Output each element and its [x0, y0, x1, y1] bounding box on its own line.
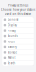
staticText: used on this device	[4, 12, 31, 16]
staticText: Display	[7, 23, 16, 27]
button[interactable]: Wallet	[2, 55, 34, 60]
staticText: Privacy	[7, 29, 15, 32]
button[interactable]: Storage	[2, 50, 34, 55]
staticText: Wallet	[7, 56, 15, 59]
button[interactable]: Privacy	[2, 28, 34, 33]
button[interactable]: Search	[2, 60, 34, 66]
staticText: Privacy settings	[8, 4, 28, 7]
staticText: Storage	[7, 51, 17, 54]
staticText: Battery	[7, 45, 16, 49]
button[interactable]: Display	[2, 22, 34, 28]
staticText: Search	[7, 61, 15, 65]
staticText: General	[7, 18, 18, 21]
staticText: Focus	[7, 40, 14, 43]
staticText: Choose how your data is	[1, 8, 35, 11]
button[interactable]: Sounds	[2, 33, 34, 39]
staticText: Sounds	[7, 34, 17, 38]
button[interactable]: Battery	[2, 44, 34, 50]
button[interactable]: General	[2, 17, 34, 22]
button[interactable]: Focus	[2, 39, 34, 44]
